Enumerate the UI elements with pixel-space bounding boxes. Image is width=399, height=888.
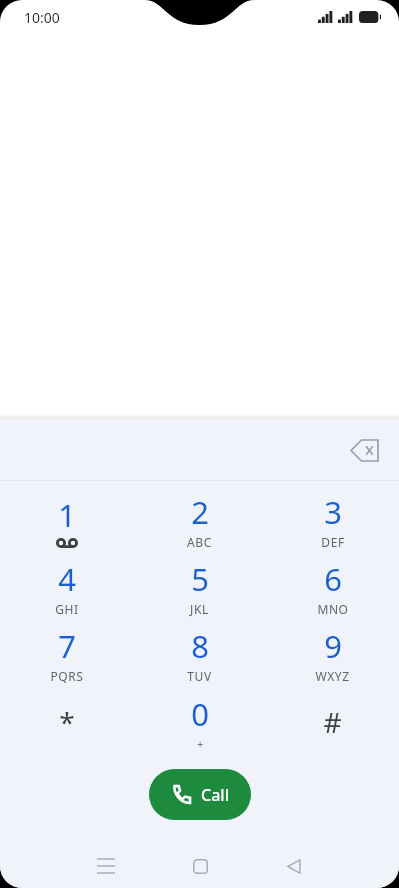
staticText: 1 — [58, 494, 76, 536]
button[interactable]: 3 — [266, 487, 399, 554]
button[interactable]: Backspace — [341, 426, 389, 474]
staticText: 0 — [191, 693, 209, 735]
staticText: 9 — [324, 625, 342, 667]
staticText: 6 — [324, 558, 342, 600]
staticText: GHI — [55, 601, 79, 617]
staticText: TUV — [187, 668, 212, 684]
button[interactable]: Recent apps — [82, 844, 130, 888]
staticText: # — [323, 703, 342, 741]
button[interactable]: 5 — [133, 554, 266, 621]
staticText: DEF — [321, 534, 345, 550]
staticText: 5 — [191, 558, 209, 600]
button[interactable]: 9 — [266, 621, 399, 688]
button[interactable]: 4 — [0, 554, 133, 621]
staticText: 4 — [58, 558, 76, 600]
button[interactable]: 7 — [0, 621, 133, 688]
button[interactable]: 2 — [133, 487, 266, 554]
button[interactable]: 6 — [266, 554, 399, 621]
staticText: PQRS — [50, 668, 84, 684]
staticText: 8 — [191, 625, 209, 667]
button[interactable]: 8 — [133, 621, 266, 688]
button[interactable]: # — [266, 688, 399, 755]
staticText: MNO — [317, 601, 349, 617]
staticText: Call — [201, 784, 229, 806]
staticText: ABC — [187, 534, 212, 550]
button[interactable]: Home — [176, 844, 224, 888]
button[interactable]: 0 — [133, 688, 266, 755]
staticText: JKL — [190, 601, 209, 617]
staticText: * — [59, 703, 75, 741]
staticText: WXYZ — [315, 668, 350, 684]
button[interactable]: 1 — [0, 487, 133, 554]
button[interactable]: Back — [270, 844, 318, 888]
button[interactable]: Call — [149, 769, 251, 820]
button[interactable]: * — [0, 688, 133, 755]
staticText: + — [197, 736, 204, 751]
staticText: 2 — [191, 491, 209, 533]
staticText: 3 — [324, 491, 342, 533]
staticText: 7 — [58, 625, 76, 667]
staticText: 10:00 — [24, 8, 60, 27]
